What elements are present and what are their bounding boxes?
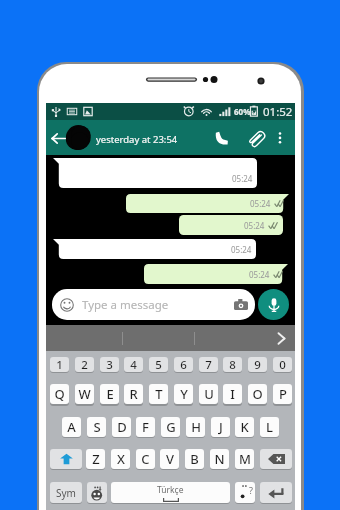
button[interactable]: B	[185, 449, 204, 469]
staticText: B	[190, 450, 199, 468]
button[interactable]: Sym	[50, 482, 82, 503]
staticText: Türkçe	[157, 484, 184, 496]
staticText: D	[117, 418, 127, 436]
button[interactable]: O	[248, 384, 267, 404]
staticText: 9	[254, 357, 261, 372]
staticText: 1	[56, 357, 63, 372]
button[interactable]: 05:24	[179, 215, 283, 235]
button[interactable]: 5	[149, 357, 168, 372]
button[interactable]: T	[149, 384, 168, 404]
staticText: A	[67, 418, 76, 436]
button[interactable]: Shift	[50, 449, 82, 469]
button[interactable]: Attach	[244, 126, 268, 150]
button[interactable]: Emoji	[87, 482, 107, 503]
button[interactable]: L	[260, 417, 279, 437]
staticText: 05:24	[231, 244, 252, 255]
button[interactable]: X	[111, 449, 130, 469]
button[interactable]: 0	[273, 357, 292, 372]
staticText: W	[78, 385, 91, 403]
staticText: 05:24	[249, 269, 270, 280]
staticText: H	[191, 418, 201, 436]
staticText: I	[230, 385, 235, 403]
button[interactable]: K	[235, 417, 254, 437]
button[interactable]: ?	[235, 482, 255, 503]
button[interactable]: Q	[50, 384, 69, 404]
staticText: L	[266, 418, 273, 436]
staticText: Type a message	[82, 297, 169, 313]
staticText: ?	[249, 484, 253, 496]
button[interactable]: Record voice message	[258, 289, 289, 320]
button[interactable]: More options	[269, 127, 291, 149]
button[interactable]: Z	[86, 449, 105, 469]
staticText: S	[93, 418, 101, 436]
staticText: 05:24	[232, 173, 253, 184]
button[interactable]: V	[160, 449, 179, 469]
staticText: F	[142, 418, 149, 436]
button[interactable]: Türkçe	[111, 482, 230, 503]
staticText: J	[219, 418, 223, 436]
button[interactable]: 8	[223, 357, 242, 372]
button[interactable]: 05:24	[53, 239, 256, 259]
button[interactable]: E	[100, 384, 119, 404]
button[interactable]: Enter	[260, 482, 292, 503]
staticText: T	[155, 385, 163, 403]
button[interactable]: Back	[48, 127, 70, 149]
staticText: Q	[54, 385, 65, 403]
staticText: 2	[81, 357, 88, 372]
staticText: V	[166, 450, 174, 468]
staticText: M	[239, 450, 251, 468]
staticText: 3	[106, 357, 113, 372]
button[interactable]: 6	[174, 357, 193, 372]
button[interactable]: Y	[174, 384, 193, 404]
staticText: 01:52	[263, 104, 293, 120]
button[interactable]: More suggestions	[267, 325, 295, 352]
button[interactable]: S	[87, 417, 106, 437]
button[interactable]: W	[75, 384, 94, 404]
button[interactable]: F	[136, 417, 155, 437]
button[interactable]: G	[161, 417, 180, 437]
button[interactable]: 1	[50, 357, 69, 372]
staticText: R	[129, 385, 138, 403]
button[interactable]: 2	[75, 357, 94, 372]
staticText: G	[166, 418, 176, 436]
staticText: 0	[279, 357, 286, 372]
button[interactable]: R	[124, 384, 143, 404]
staticText: P	[279, 385, 287, 403]
button[interactable]: 05:24	[144, 264, 288, 284]
button[interactable]: N	[210, 449, 229, 469]
button[interactable]: 9	[248, 357, 267, 372]
button[interactable]: 4	[124, 357, 143, 372]
staticText: 5	[155, 357, 162, 372]
staticText: 60%	[234, 106, 251, 117]
staticText: Y	[180, 385, 188, 403]
staticText: 7	[205, 357, 212, 372]
button[interactable]: I	[223, 384, 242, 404]
button[interactable]: P	[273, 384, 292, 404]
staticText: 4	[130, 357, 137, 372]
button[interactable]: M	[235, 449, 254, 469]
button[interactable]: J	[211, 417, 230, 437]
staticText: Sym	[56, 486, 76, 500]
staticText: N	[214, 450, 225, 468]
button[interactable]: Backspace	[260, 449, 292, 469]
button[interactable]: H	[186, 417, 205, 437]
staticText: 8	[229, 357, 236, 372]
staticText: X	[117, 450, 125, 468]
staticText: 05:24	[250, 198, 271, 209]
staticText: K	[240, 418, 249, 436]
staticText: yesterday at 23:54	[96, 133, 178, 146]
staticText: O	[252, 385, 263, 403]
staticText: Z	[92, 450, 100, 468]
button[interactable]: D	[112, 417, 131, 437]
button[interactable]: Type a message	[52, 289, 255, 320]
button[interactable]: U	[199, 384, 218, 404]
button[interactable]: Call	[210, 126, 234, 150]
button[interactable]: 05:24	[126, 194, 289, 213]
staticText: 05:24	[244, 220, 265, 231]
button[interactable]: A	[62, 417, 81, 437]
button[interactable]: 3	[100, 357, 119, 372]
button[interactable]: 7	[199, 357, 218, 372]
button[interactable]: C	[136, 449, 155, 469]
button[interactable]: 05:24	[53, 158, 257, 188]
staticText: U	[204, 385, 214, 403]
